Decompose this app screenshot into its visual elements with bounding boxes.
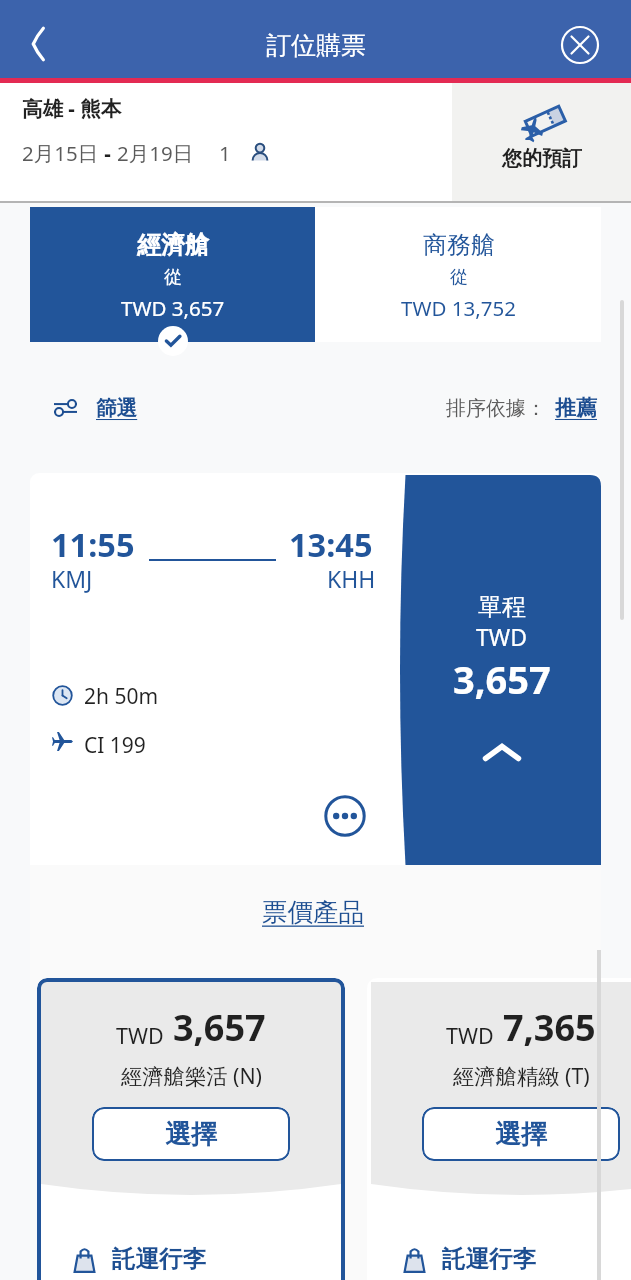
staticText: KMJ [51,563,93,594]
staticText: 3,657 [173,1003,266,1052]
button[interactable]: Back [12,16,68,72]
staticText: 經濟艙精緻 (T) [453,1061,590,1090]
button[interactable]: TWD [37,978,345,1280]
button[interactable]: 選擇 [92,1107,290,1161]
staticText: 2月15日 [22,139,99,167]
staticText: 2月19日 [117,139,194,167]
staticText: 高雄 - 熊本 [22,94,122,122]
button[interactable]: Close [556,21,604,69]
button[interactable]: 您的預訂 [452,83,631,203]
staticText: 經濟艙樂活 (N) [121,1061,262,1090]
staticText: TWD 13,752 [401,294,516,322]
button[interactable]: 單程 [400,475,601,865]
staticText: 訂位購票 [266,30,366,61]
staticText: - [99,139,117,167]
staticText: 推薦 [555,395,597,421]
staticText: 從 [450,266,468,289]
staticText: 3,657 [453,653,551,705]
staticText: TWD [116,1021,164,1050]
staticText: 2h 50m [84,682,159,711]
staticText: TWD [446,1021,494,1050]
staticText: KHH [327,563,376,594]
staticText: 13:45 [289,522,373,566]
staticText: TWD 3,657 [121,294,225,322]
button[interactable]: 經濟艙 [30,207,315,342]
staticText: 託運行李 [442,1244,536,1274]
button[interactable]: 篩選 [54,395,138,421]
staticText: 選擇 [495,1118,547,1151]
staticText: 7,365 [503,1003,596,1052]
staticText: TWD [476,621,527,652]
staticText: 票價產品 [262,896,364,928]
staticText: 篩選 [96,395,138,421]
button[interactable]: TWD [367,978,631,1280]
staticText: 1 [219,139,231,167]
staticText: 單程 [478,592,526,622]
button[interactable] [30,473,601,865]
staticText: 商務艙 [423,230,495,260]
staticText: 託運行李 [112,1244,206,1274]
button[interactable]: 選擇 [422,1107,620,1161]
staticText: 從 [164,266,182,289]
button[interactable]: 商務艙 [315,207,601,342]
staticText: 11:55 [51,522,135,566]
button[interactable]: 高雄 - 熊本 [0,83,452,203]
button[interactable]: 推薦 [555,395,597,421]
staticText: 您的預訂 [502,146,582,171]
staticText: 選擇 [165,1118,217,1151]
staticText: 排序依據： [446,396,546,421]
button[interactable]: More flight details [324,795,366,837]
staticText: CI 199 [84,731,146,760]
button[interactable]: 票價產品 [262,896,364,928]
staticText: 經濟艙 [137,230,209,260]
